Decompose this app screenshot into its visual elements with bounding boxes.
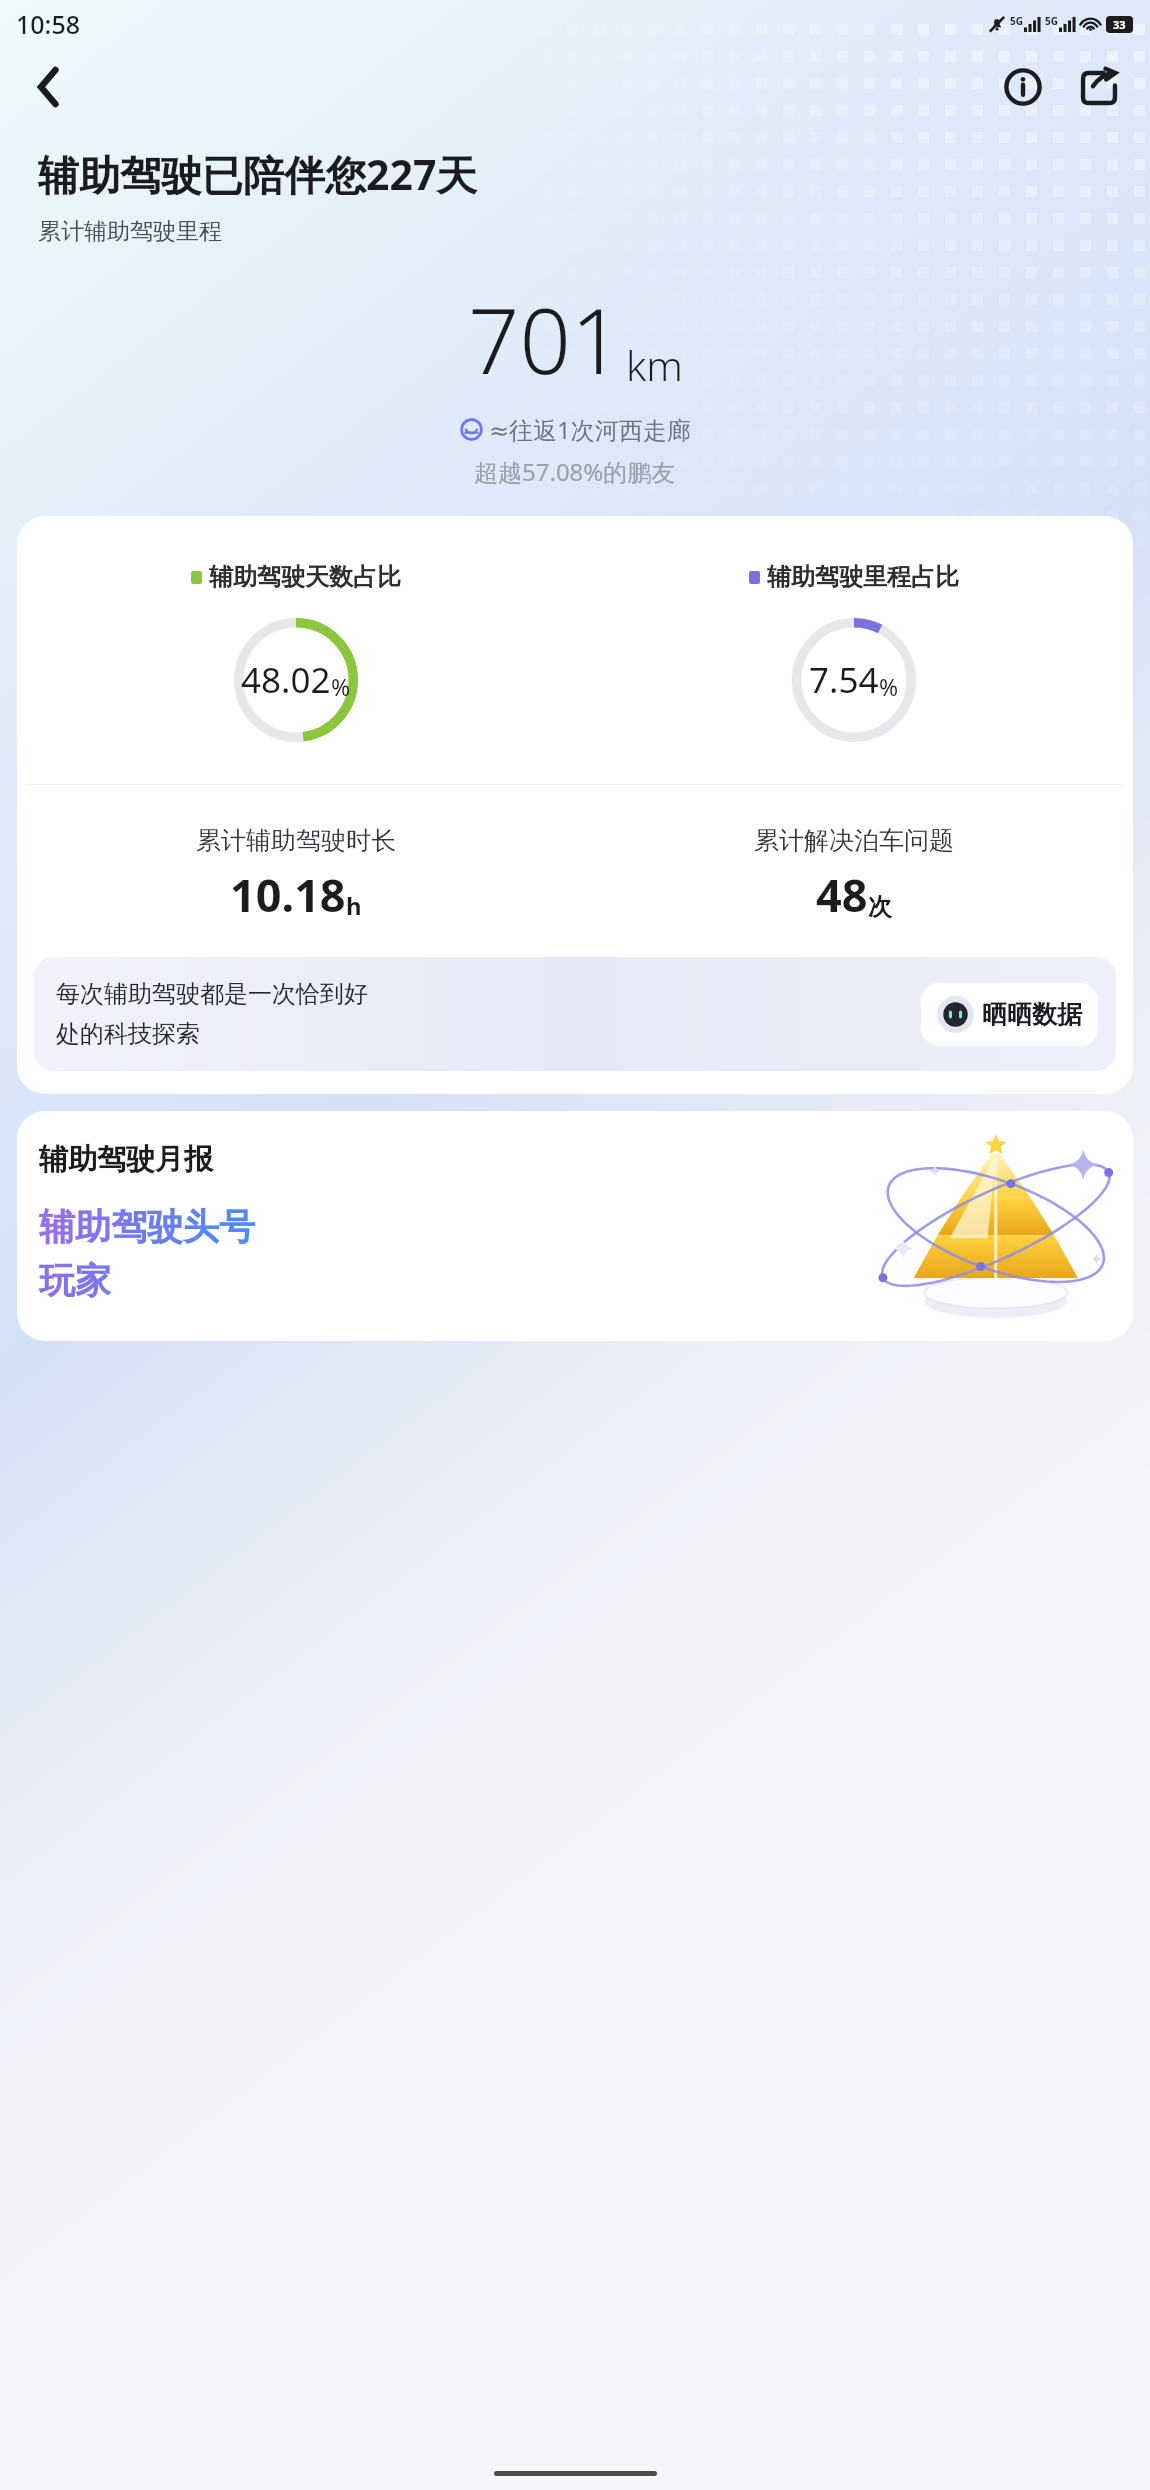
button[interactable]: Info (992, 56, 1054, 118)
staticText: 超越57.08%的鹏友 (474, 455, 676, 488)
button[interactable]: 晒晒数据 (921, 983, 1098, 1046)
staticText: 累计解决泊车问题 (754, 825, 954, 856)
staticText: 701 (468, 278, 623, 401)
button[interactable]: 辅助驾驶月报 (17, 1111, 1133, 1341)
staticText: 10:58 (16, 7, 81, 41)
staticText: 48 (816, 864, 868, 925)
staticText: 33 (1113, 17, 1126, 32)
staticText: % (879, 671, 899, 702)
staticText: 累计辅助驾驶里程 (38, 217, 222, 246)
staticText: 5G (1045, 14, 1058, 28)
button[interactable]: Share (1068, 56, 1130, 118)
staticText: 每次辅助驾驶都是一次恰到好 (56, 979, 368, 1009)
staticText: 7.54 (809, 656, 879, 704)
staticText: 10.18 (230, 864, 346, 925)
staticText: 累计辅助驾驶时长 (196, 825, 396, 856)
staticText: 处的科技探索 (56, 1019, 200, 1049)
staticText: 晒晒数据 (982, 999, 1082, 1030)
staticText: 5G (1010, 14, 1023, 28)
staticText: h (346, 889, 362, 922)
staticText: 辅助驾驶已陪伴您227天 (38, 146, 478, 202)
button[interactable]: 辅助驾驶天数占比 (17, 516, 1133, 1094)
staticText: 辅助驾驶头号 (39, 1204, 255, 1249)
staticText: 48.02 (241, 656, 331, 704)
staticText: % (331, 671, 351, 702)
staticText: 玩家 (39, 1258, 111, 1303)
staticText: 次 (868, 892, 892, 922)
staticText: 辅助驾驶月报 (39, 1141, 213, 1178)
button[interactable]: Back (20, 58, 78, 116)
staticText: 辅助驾驶天数占比 (209, 562, 401, 592)
staticText: 辅助驾驶里程占比 (767, 562, 959, 592)
staticText: ≈往返1次河西走廊 (489, 413, 691, 446)
staticText: km (626, 337, 683, 393)
